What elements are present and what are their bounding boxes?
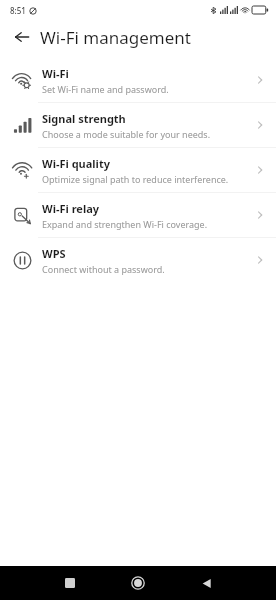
staticText: Wi-Fi bbox=[42, 66, 69, 81]
button[interactable]: Wi-Fi bbox=[0, 58, 276, 102]
button[interactable]: Back bbox=[8, 23, 36, 51]
button[interactable]: WPS bbox=[0, 238, 276, 282]
staticText: Choose a mode suitable for your needs. bbox=[42, 128, 211, 140]
button[interactable]: Home bbox=[125, 570, 151, 596]
button[interactable]: Recent apps bbox=[57, 570, 83, 596]
button[interactable]: Wi-Fi relay bbox=[0, 193, 276, 237]
staticText: Expand and strengthen Wi-Fi coverage. bbox=[42, 218, 208, 230]
button[interactable]: Wi-Fi quality bbox=[0, 148, 276, 192]
staticText: WPS bbox=[42, 246, 66, 261]
staticText: Wi-Fi relay bbox=[42, 201, 100, 216]
staticText: Optimize signal path to reduce interfere… bbox=[42, 173, 229, 185]
staticText: Connect without a password. bbox=[42, 263, 165, 275]
staticText: Wi-Fi quality bbox=[42, 156, 110, 171]
button[interactable]: Signal strength bbox=[0, 103, 276, 147]
button[interactable]: Back bbox=[193, 570, 219, 596]
staticText: 8:51 bbox=[10, 5, 26, 16]
staticText: Signal strength bbox=[42, 111, 126, 126]
staticText: Wi-Fi management bbox=[40, 26, 191, 49]
staticText: Set Wi-Fi name and password. bbox=[42, 83, 169, 95]
